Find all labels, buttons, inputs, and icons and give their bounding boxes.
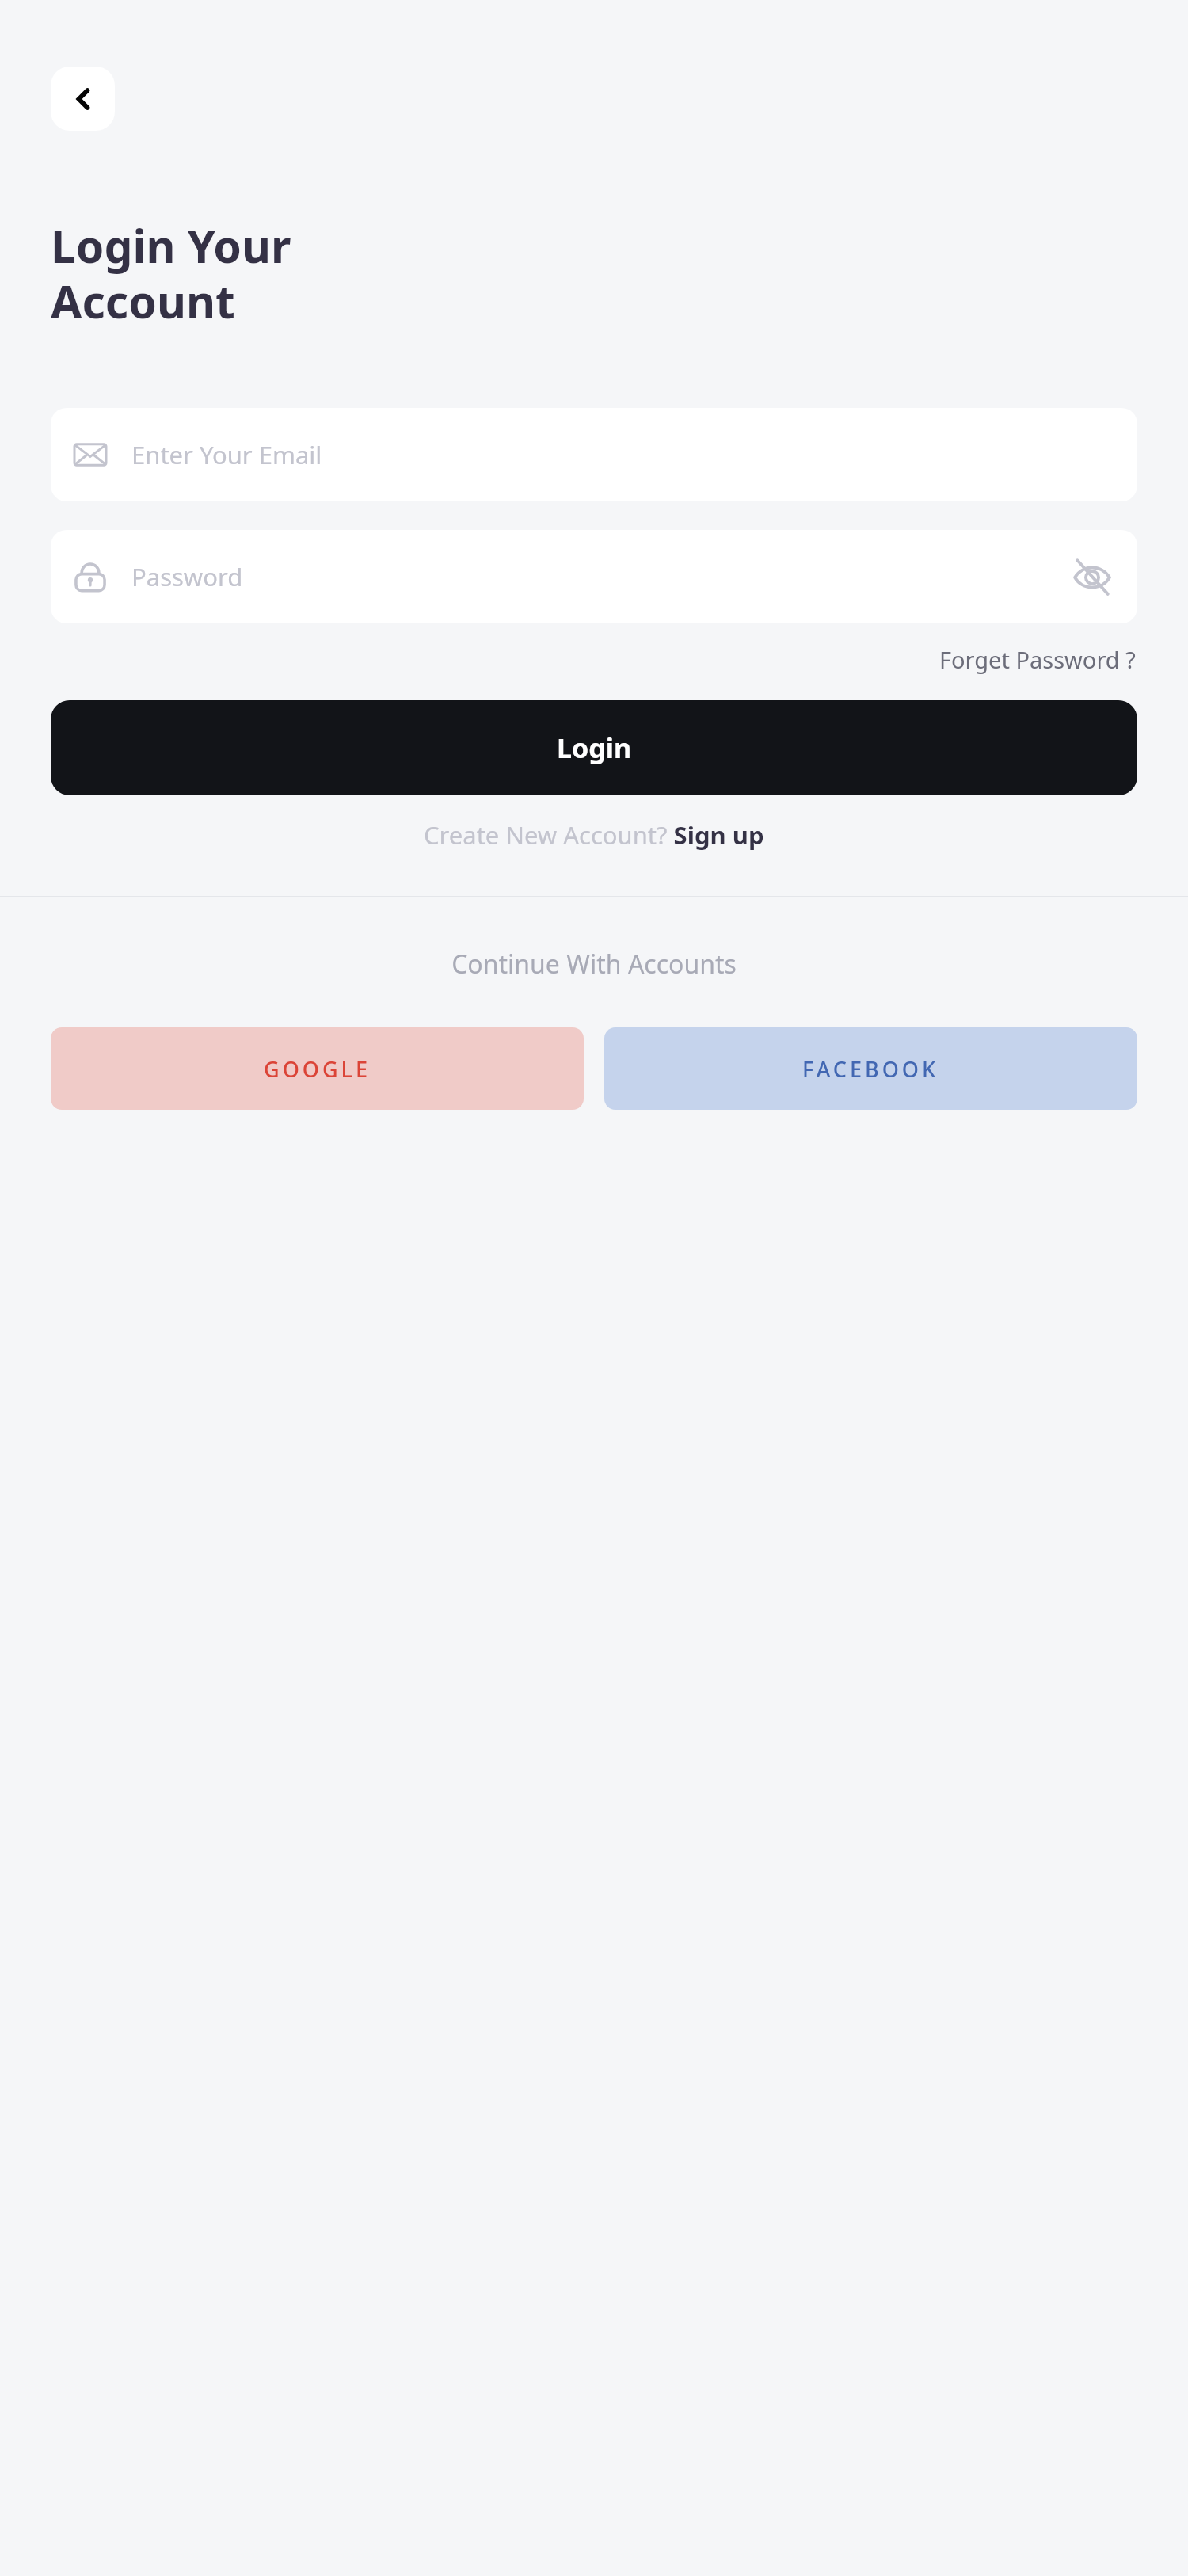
staticText: Create New Account? Sign up: [424, 818, 764, 852]
button[interactable]: Create New Account? Sign up: [419, 815, 769, 855]
button[interactable]: Password: [51, 530, 1137, 623]
staticText: GOOGLE: [264, 1054, 371, 1084]
staticText: Login: [557, 730, 632, 766]
staticText: Forget Password ?: [939, 644, 1136, 675]
button[interactable]: Login: [51, 700, 1137, 795]
button[interactable]: Enter Your Email: [51, 408, 1137, 501]
button[interactable]: FACEBOOK: [604, 1027, 1137, 1110]
button[interactable]: GOOGLE: [51, 1027, 584, 1110]
button[interactable]: Back: [51, 67, 115, 131]
staticText: Enter Your Email: [131, 438, 322, 471]
button[interactable]: Forget Password ?: [938, 641, 1137, 678]
staticText: FACEBOOK: [802, 1054, 939, 1084]
staticText: Continue With Accounts: [451, 947, 737, 981]
button[interactable]: Show password: [1069, 554, 1115, 600]
staticText: Password: [131, 560, 243, 593]
staticText: Login Your Account: [51, 215, 291, 332]
